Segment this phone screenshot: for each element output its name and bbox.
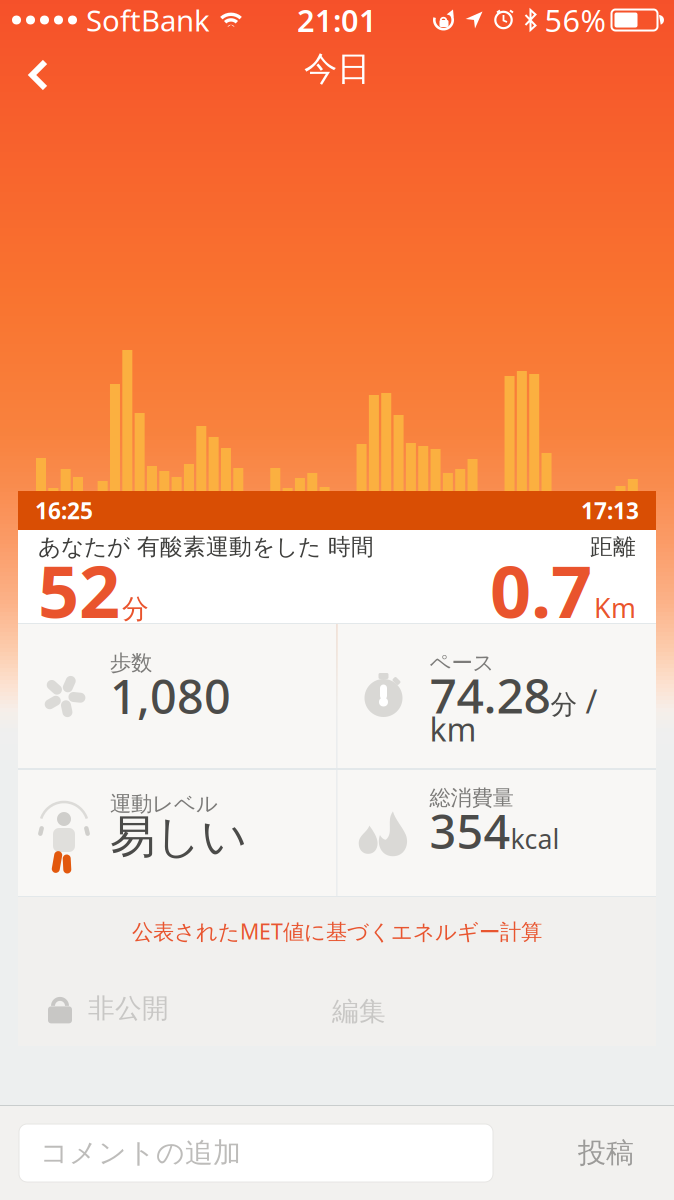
staticText: 74.28	[429, 663, 550, 727]
staticText: 0.7	[490, 542, 592, 638]
staticText: 分	[122, 593, 149, 625]
button[interactable]: 非公開	[45, 992, 169, 1025]
staticText: 公表されたMET値に基づくエネルギー計算	[132, 917, 542, 945]
staticText: 1,080	[110, 665, 231, 727]
staticText: 投稿	[578, 1136, 634, 1170]
staticText: コメントの追加	[40, 1136, 241, 1170]
staticText: ペース	[429, 650, 494, 676]
staticText: 17:13	[581, 495, 639, 525]
staticText: Km	[594, 590, 636, 625]
staticText: 56%	[544, 0, 605, 40]
staticText: あなたが 有酸素運動をした 時間	[38, 533, 374, 561]
staticText: SoftBank	[86, 0, 210, 39]
staticText: 距離	[590, 533, 636, 561]
staticText: 非公開	[88, 992, 169, 1025]
staticText: 354	[429, 800, 510, 862]
staticText: 歩数	[110, 650, 152, 676]
button[interactable]: コメントの追加	[19, 1124, 493, 1182]
staticText: km	[429, 708, 476, 750]
button[interactable]: 編集	[332, 995, 386, 1028]
staticText: 易しい	[110, 809, 247, 865]
staticText: /	[577, 680, 597, 722]
button[interactable]: 投稿	[566, 1136, 646, 1170]
staticText: kcal	[510, 821, 559, 856]
staticText: 編集	[332, 995, 386, 1028]
staticText: 運動レベル	[110, 791, 218, 817]
staticText: 今日	[304, 48, 370, 89]
staticText: 21:01	[297, 0, 377, 40]
staticText: 16:25	[35, 495, 93, 525]
staticText: 52	[38, 542, 120, 638]
staticText: 総消費量	[429, 785, 513, 811]
staticText: 分	[550, 688, 577, 721]
button[interactable]: 戻る	[16, 43, 60, 107]
